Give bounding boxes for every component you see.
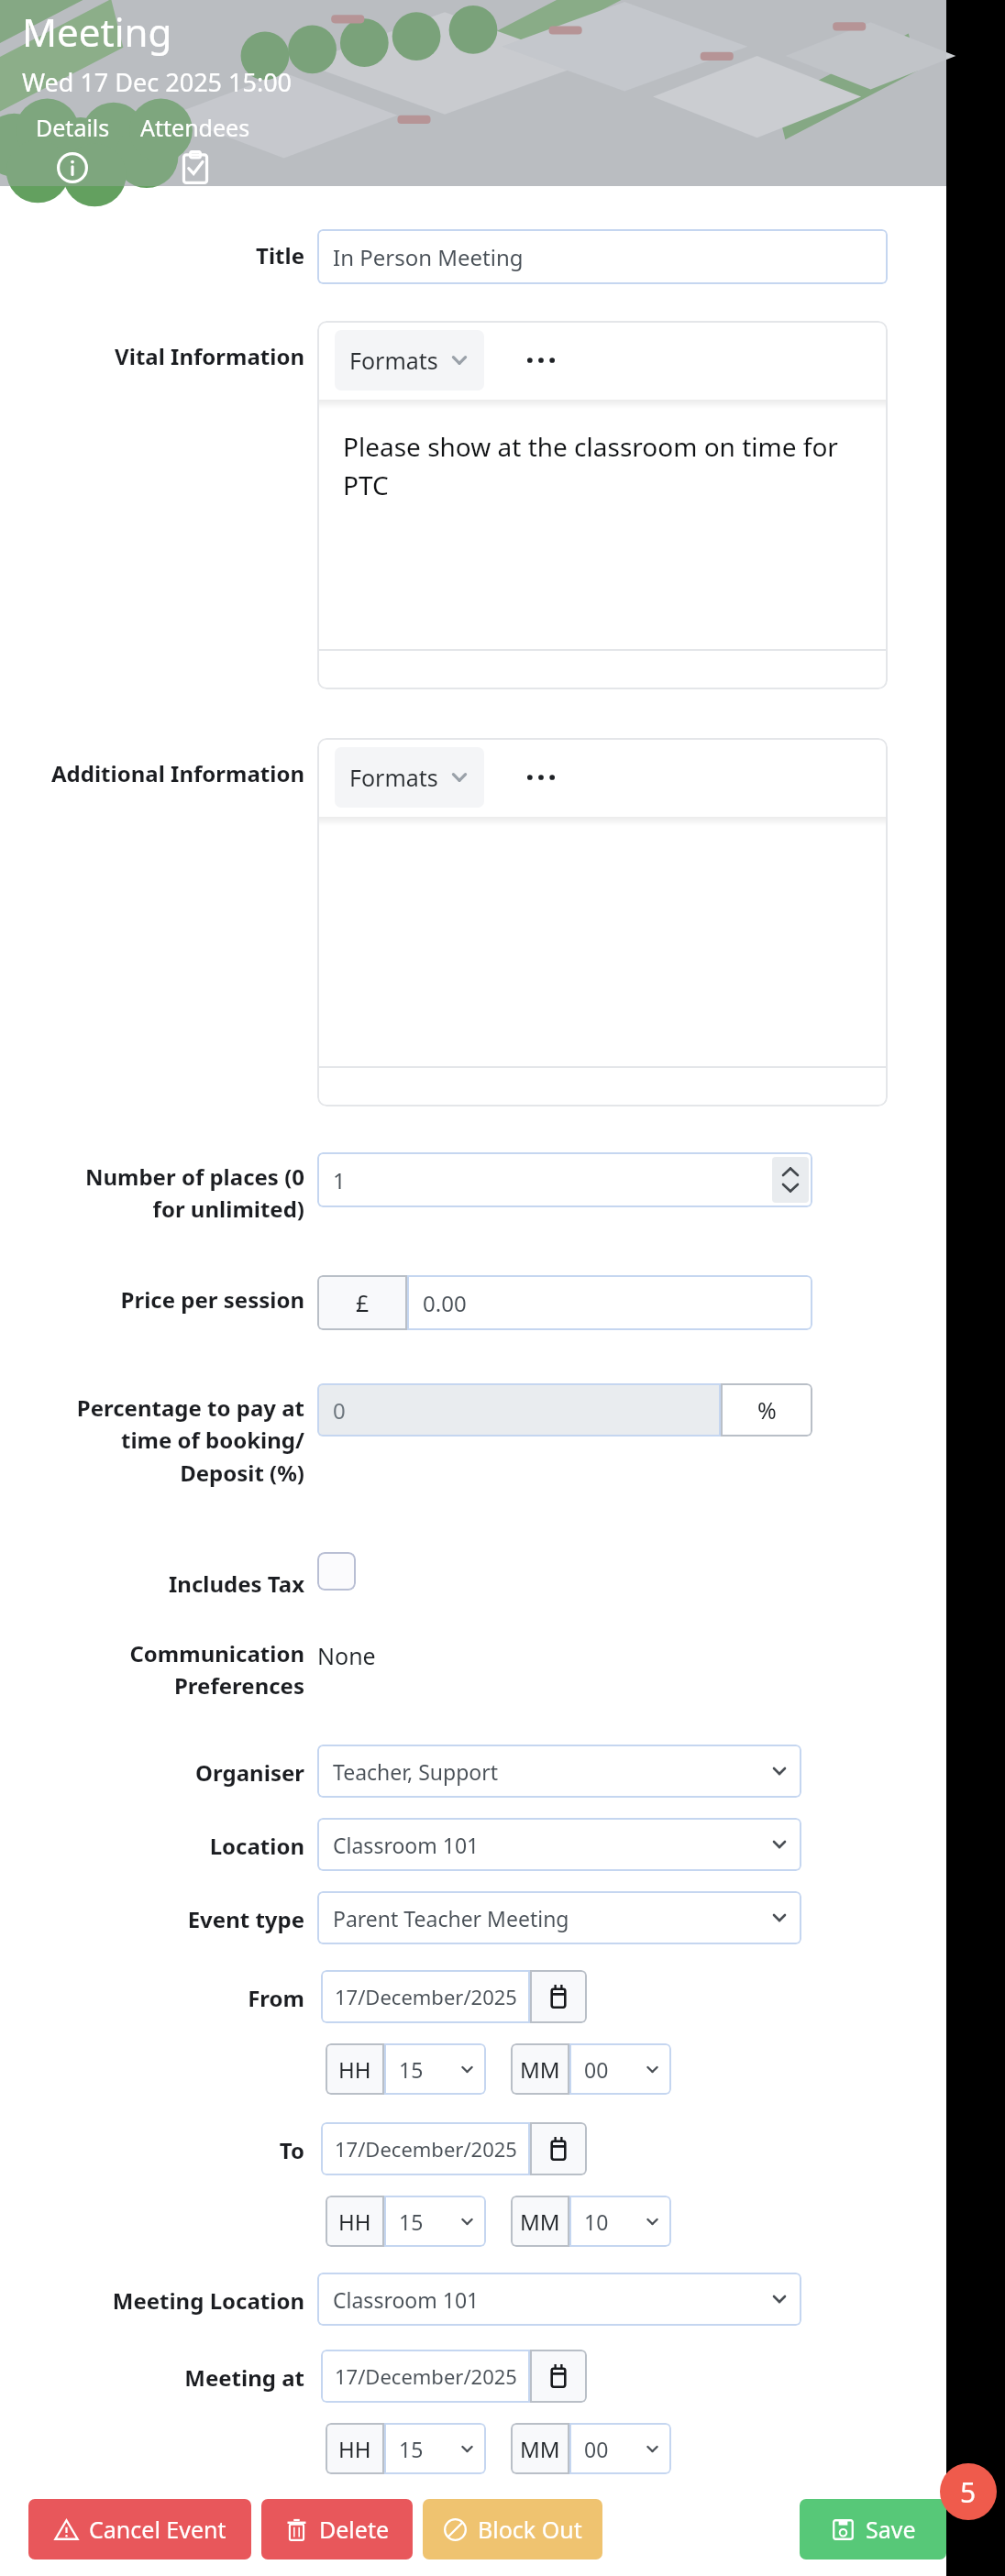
staticText: £	[356, 1287, 370, 1318]
button[interactable]: Attendees	[138, 112, 253, 185]
staticText: 17/December/2025	[335, 2362, 517, 2390]
staticText: Parent Teacher Meeting	[333, 1904, 569, 1932]
staticText: Event type	[0, 1904, 304, 1934]
button[interactable]: 1	[317, 1152, 812, 1207]
button[interactable]: Stepper	[772, 1157, 809, 1203]
staticText: Wed 17 Dec 2025 15:00	[22, 65, 293, 99]
staticText: Formats	[349, 345, 438, 376]
staticText: 1	[333, 1165, 346, 1195]
button[interactable]: HH	[326, 2043, 384, 2095]
button[interactable]: Pick date	[530, 2350, 587, 2403]
button[interactable]: Teacher, Support	[317, 1745, 801, 1798]
button[interactable]: Classroom 101	[317, 1818, 801, 1871]
button[interactable]: HH	[326, 2423, 384, 2474]
button[interactable]: Pick date	[530, 1970, 587, 2023]
button[interactable]: 0	[317, 1383, 721, 1437]
staticText: 17/December/2025	[335, 2135, 517, 2163]
staticText: Cancel Event	[89, 2514, 226, 2545]
staticText: Vital Information	[0, 341, 304, 371]
staticText: Title	[0, 240, 304, 270]
staticText: 15	[399, 2435, 424, 2463]
button[interactable]: 00	[569, 2423, 671, 2474]
button[interactable]: Details	[22, 112, 123, 186]
staticText: Percentage to pay at time of booking/ De…	[0, 1393, 304, 1488]
staticText: In Person Meeting	[333, 242, 524, 272]
button[interactable]: 17/December/2025	[321, 1970, 530, 2023]
staticText: Organiser	[0, 1757, 304, 1788]
button[interactable]: MM	[511, 2196, 569, 2247]
button[interactable]: 15	[384, 2196, 486, 2247]
button[interactable]: 00	[569, 2043, 671, 2095]
button[interactable]: MM	[511, 2423, 569, 2474]
staticText: MM	[520, 2207, 560, 2237]
button[interactable]: Block Out	[423, 2499, 602, 2559]
button[interactable]: More formatting options	[517, 336, 565, 384]
staticText: Communication Preferences	[0, 1638, 304, 1701]
button[interactable]: Includes Tax checkbox	[317, 1552, 356, 1591]
button[interactable]: Formats	[335, 747, 484, 808]
staticText: 17/December/2025	[335, 1983, 517, 2010]
staticText: MM	[520, 2054, 560, 2085]
staticText: Includes Tax	[0, 1569, 304, 1599]
button[interactable]: HH	[326, 2196, 384, 2247]
button[interactable]: Delete	[261, 2499, 413, 2559]
staticText: Number of places (0 for unlimited)	[0, 1161, 304, 1224]
staticText: %	[757, 1394, 777, 1426]
staticText: Location	[0, 1831, 304, 1861]
staticText: HH	[338, 2434, 371, 2464]
staticText: 5	[960, 2473, 977, 2511]
staticText: Details	[36, 112, 110, 143]
staticText: Meeting	[22, 6, 172, 58]
staticText: None	[317, 1640, 376, 1671]
staticText: 00	[584, 2055, 609, 2084]
staticText: Price per session	[0, 1284, 304, 1315]
staticText: Classroom 101	[333, 2285, 480, 2314]
button[interactable]: Save	[800, 2499, 946, 2559]
button[interactable]: 17/December/2025	[321, 2122, 530, 2175]
button[interactable]: 15	[384, 2423, 486, 2474]
staticText: Attendees	[140, 112, 250, 143]
staticText: Formats	[349, 762, 438, 793]
staticText: Block Out	[478, 2514, 582, 2545]
staticText: HH	[338, 2207, 371, 2237]
staticText: 15	[399, 2055, 424, 2084]
button[interactable]: Parent Teacher Meeting	[317, 1891, 801, 1944]
staticText: From	[0, 1983, 304, 2013]
button[interactable]: 15	[384, 2043, 486, 2095]
button[interactable]: In Person Meeting	[317, 229, 888, 284]
staticText: 0.00	[423, 1288, 467, 1318]
staticText: 10	[584, 2207, 609, 2236]
staticText: HH	[338, 2054, 371, 2085]
button[interactable]: Cancel Event	[28, 2499, 251, 2559]
staticText: To	[0, 2135, 304, 2165]
button[interactable]: Classroom 101	[317, 2273, 801, 2326]
staticText: Save	[866, 2514, 916, 2545]
staticText: 00	[584, 2435, 609, 2463]
button[interactable]: %	[721, 1383, 812, 1437]
button[interactable]: MM	[511, 2043, 569, 2095]
staticText: 0	[333, 1395, 346, 1426]
button[interactable]: Pick date	[530, 2122, 587, 2175]
staticText: Meeting at	[0, 2362, 304, 2393]
button[interactable]: Formats	[335, 330, 484, 391]
button[interactable]: 10	[569, 2196, 671, 2247]
staticText: Additional Information	[0, 758, 304, 788]
button[interactable]: 0.00	[407, 1275, 812, 1330]
button[interactable]: 17/December/2025	[321, 2350, 530, 2403]
button[interactable]: 5 notifications	[940, 2463, 997, 2520]
button[interactable]: £	[317, 1275, 407, 1330]
staticText: MM	[520, 2434, 560, 2464]
staticText: 15	[399, 2207, 424, 2236]
staticText: Please show at the classroom on time for…	[343, 429, 864, 502]
staticText: Teacher, Support	[333, 1757, 499, 1786]
staticText: Delete	[319, 2514, 390, 2545]
staticText: Classroom 101	[333, 1831, 480, 1859]
button[interactable]: More formatting options	[517, 754, 565, 801]
staticText: Meeting Location	[0, 2285, 304, 2316]
